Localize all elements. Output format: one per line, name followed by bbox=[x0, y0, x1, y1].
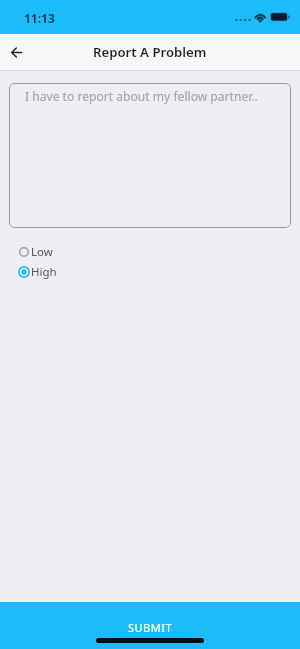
staticText: Low bbox=[31, 244, 53, 260]
staticText: High bbox=[31, 264, 57, 280]
staticText: I have to report about my fellow partner… bbox=[25, 88, 258, 104]
staticText: SUBMIT bbox=[128, 620, 173, 635]
staticText: 11:13 bbox=[24, 10, 55, 26]
button[interactable]: SUBMIT bbox=[0, 602, 300, 649]
staticText: Report A Problem bbox=[93, 43, 207, 61]
button[interactable]: High bbox=[0, 262, 300, 282]
button[interactable]: I have to report about my fellow partner… bbox=[9, 83, 291, 228]
button[interactable]: Low bbox=[0, 242, 300, 262]
button[interactable]: Back bbox=[1, 37, 31, 67]
